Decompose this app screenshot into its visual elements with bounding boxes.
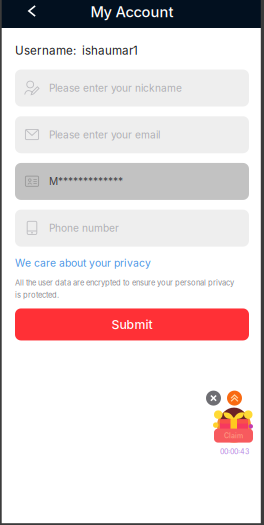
button[interactable]: Close promotion: [206, 391, 221, 406]
staticText: M*************: [49, 175, 123, 188]
staticText: 00:00:43: [220, 448, 249, 456]
staticText: Claim: [224, 431, 243, 440]
staticText: Please enter your nickname: [49, 82, 182, 94]
staticText: We care about your privacy: [15, 257, 151, 269]
staticText: All the user data are encrypted to ensur…: [15, 278, 234, 287]
button[interactable]: Back: [0, 0, 43, 22]
button[interactable]: Please enter your email: [15, 116, 249, 153]
button[interactable]: We care about your privacy: [15, 247, 151, 269]
staticText: Please enter your email: [49, 129, 160, 141]
staticText: Phone number: [49, 222, 119, 234]
button[interactable]: Expand promotion: [227, 391, 242, 406]
staticText: My Account: [90, 3, 173, 21]
button[interactable]: Phone number: [15, 210, 249, 247]
staticText: Submit: [111, 317, 152, 332]
staticText: Username: ishaumar1: [15, 43, 138, 57]
staticText: is protected.: [15, 290, 59, 299]
button[interactable]: M*************: [15, 163, 249, 200]
button[interactable]: Please enter your nickname: [15, 69, 249, 106]
button[interactable]: Submit: [15, 308, 249, 340]
button[interactable]: Claim gift: [213, 406, 254, 444]
